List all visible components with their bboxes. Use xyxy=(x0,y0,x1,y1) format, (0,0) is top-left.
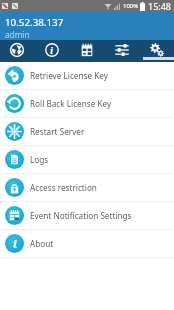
staticText: 10.52.38.137 xyxy=(5,16,64,29)
staticText: Event Notification Settings xyxy=(30,210,132,221)
staticText: Retrieve License Key xyxy=(30,70,108,81)
button[interactable]: Network xyxy=(0,40,34,62)
button[interactable]: i xyxy=(0,230,174,258)
button[interactable]: Event Notification Settings xyxy=(0,202,174,230)
staticText: Restart Server xyxy=(30,126,85,137)
staticText: 15:48 xyxy=(148,0,172,12)
staticText: admin xyxy=(5,29,30,40)
button[interactable]: Logs xyxy=(0,146,174,174)
staticText: Roll Back License Key xyxy=(30,98,112,109)
button[interactable]: Restart Server xyxy=(0,118,174,146)
staticText: Access restriction xyxy=(30,182,97,193)
staticText: Logs xyxy=(30,154,49,165)
button[interactable]: System settings xyxy=(139,40,174,62)
staticText: i xyxy=(13,236,17,251)
button[interactable]: Roll Back License Key xyxy=(0,90,174,118)
button[interactable]: Preferences xyxy=(104,40,139,62)
staticText: i xyxy=(50,44,54,56)
button[interactable]: Reports xyxy=(69,40,104,62)
button[interactable]: Information xyxy=(34,40,69,62)
button[interactable]: Access restriction xyxy=(0,174,174,202)
button[interactable]: Retrieve License Key xyxy=(0,62,174,90)
staticText: 100% xyxy=(123,2,139,10)
staticText: About xyxy=(30,238,54,249)
